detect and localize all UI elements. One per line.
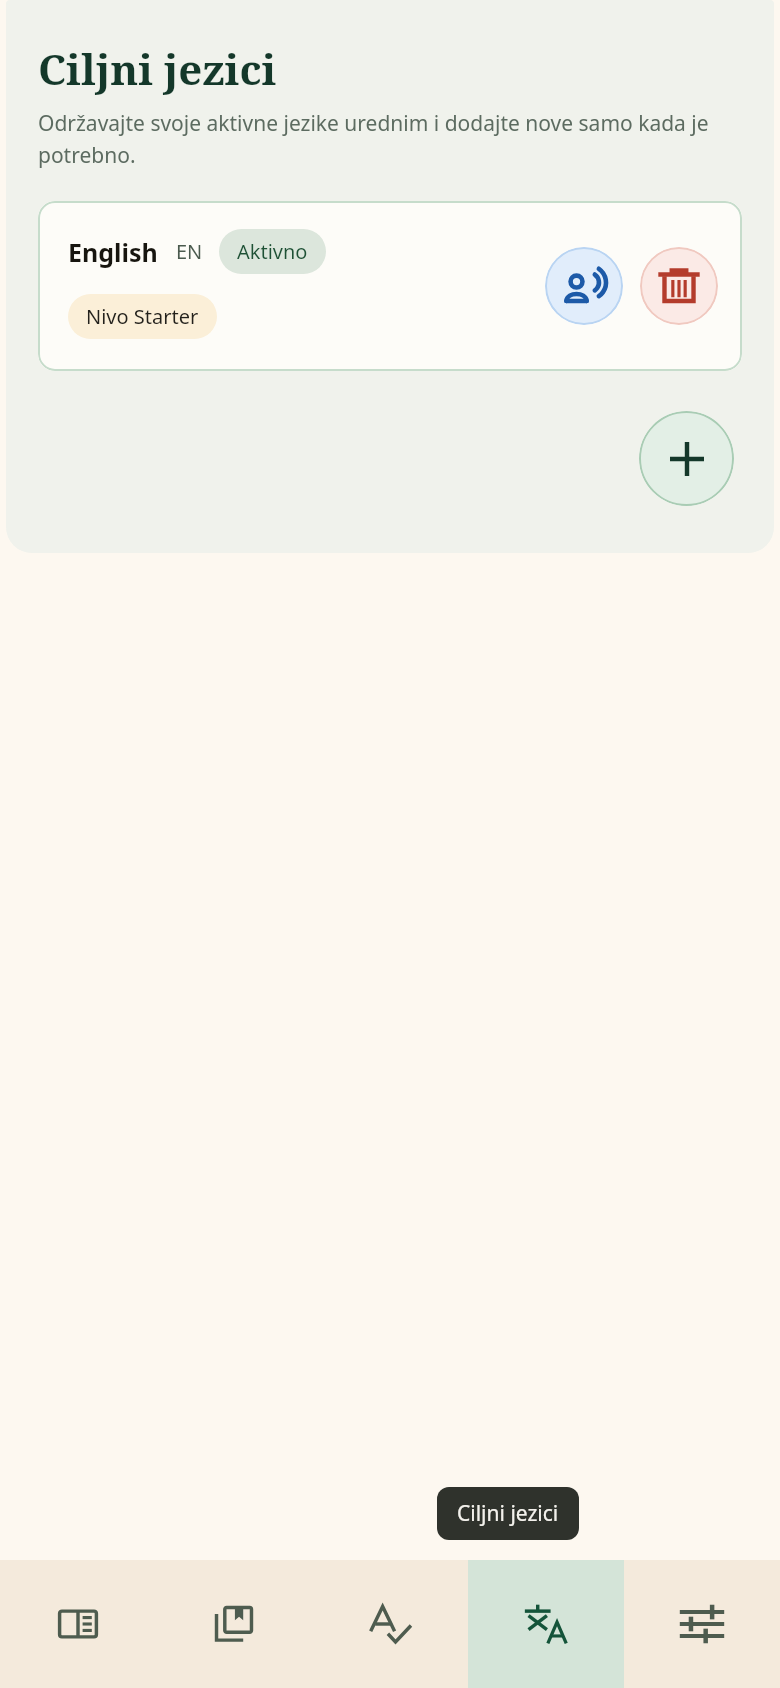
button[interactable]: Target languages: [468, 1560, 624, 1688]
staticText: English: [68, 235, 158, 269]
button[interactable]: Spellcheck: [312, 1560, 468, 1688]
button[interactable]: Reader: [0, 1560, 156, 1688]
button[interactable]: Delete: [640, 247, 718, 325]
staticText: Ciljni jezici: [38, 40, 277, 97]
button[interactable]: English: [38, 201, 742, 371]
staticText: Održavajte svoje aktivne jezike urednim …: [38, 109, 746, 169]
button[interactable]: Settings: [624, 1560, 780, 1688]
button[interactable]: Add language: [639, 411, 734, 506]
button[interactable]: Library: [156, 1560, 312, 1688]
staticText: Ciljni jezici: [457, 1499, 559, 1528]
staticText: EN: [176, 238, 203, 265]
staticText: Aktivno: [237, 238, 308, 265]
button[interactable]: Listen: [545, 247, 623, 325]
staticText: Nivo Starter: [86, 303, 199, 330]
